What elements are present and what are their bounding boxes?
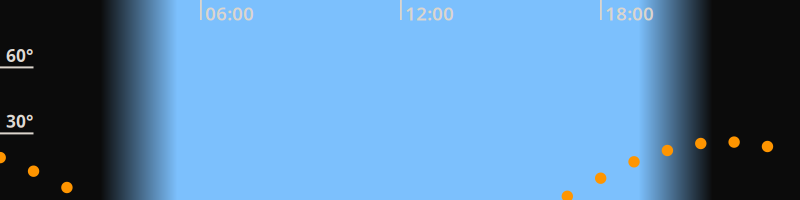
staticText: 12:00 — [405, 1, 454, 26]
staticText: 60° — [6, 44, 33, 67]
staticText: 30° — [6, 110, 33, 133]
staticText: 18:00 — [605, 1, 654, 26]
staticText: 06:00 — [205, 1, 254, 26]
